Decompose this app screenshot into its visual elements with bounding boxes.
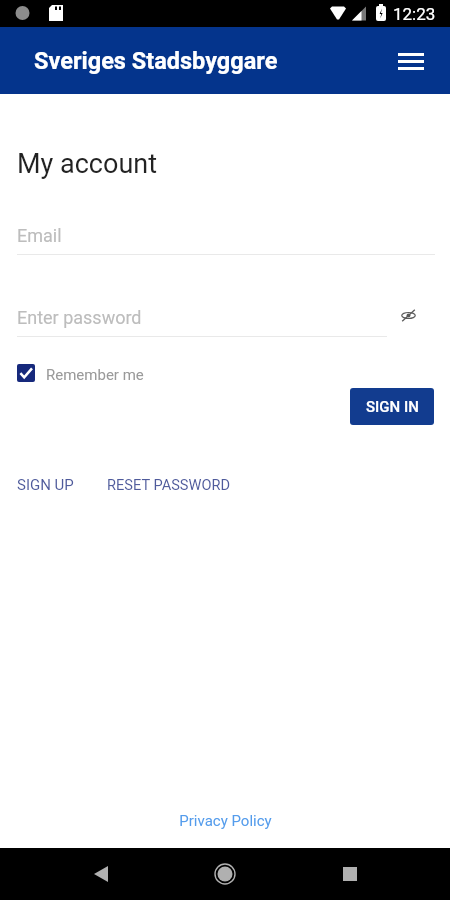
staticText: Remember me <box>46 366 144 384</box>
button[interactable]: Back <box>81 854 121 894</box>
button[interactable]: Menu <box>389 39 433 83</box>
button[interactable]: Show password <box>390 297 426 333</box>
staticText: My account <box>17 148 158 180</box>
button[interactable]: RESET PASSWORD <box>107 476 231 493</box>
button[interactable]: Privacy Policy <box>179 812 272 830</box>
staticText: RESET PASSWORD <box>107 476 231 493</box>
staticText: SIGN UP <box>17 476 74 494</box>
staticText: SIGN IN <box>366 398 419 416</box>
staticText: Privacy Policy <box>179 812 272 830</box>
button[interactable]: SIGN UP <box>17 476 74 494</box>
staticText: 12:23 <box>393 4 436 24</box>
button[interactable]: Home <box>205 854 245 894</box>
button[interactable]: Remember me <box>17 360 144 386</box>
staticText: Enter password <box>17 307 142 328</box>
button[interactable]: SIGN IN <box>350 388 434 425</box>
button[interactable]: Email <box>17 219 435 255</box>
staticText: Sveriges Stadsbyggare <box>34 47 278 75</box>
button[interactable]: Enter password <box>17 301 387 337</box>
staticText: Email <box>17 225 62 246</box>
button[interactable]: Recent apps <box>330 854 370 894</box>
